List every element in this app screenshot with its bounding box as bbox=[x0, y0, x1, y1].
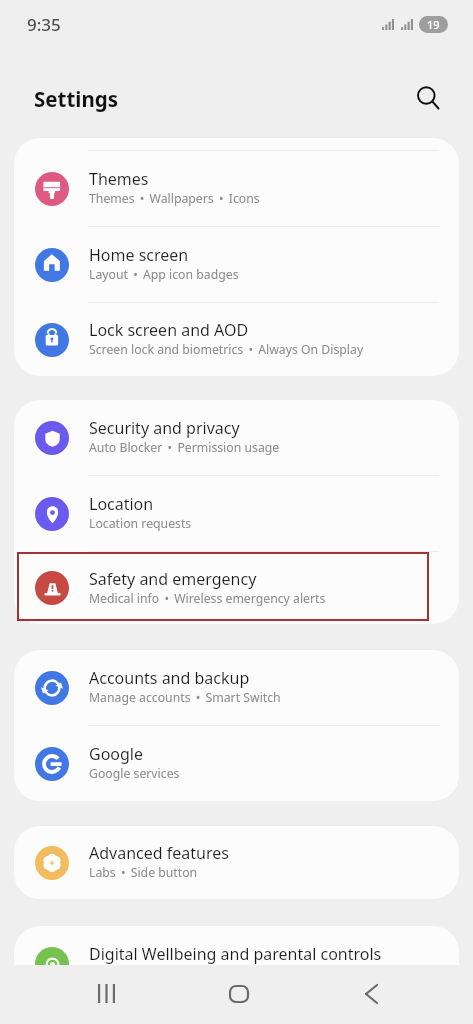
staticText: Location requests bbox=[89, 515, 192, 532]
button[interactable]: Google bbox=[14, 726, 459, 801]
staticText: Settings bbox=[34, 85, 119, 113]
staticText: Lock screen and AOD bbox=[89, 319, 249, 341]
staticText: Themes bbox=[89, 168, 149, 190]
staticText: Screen lock and biometrics • Always On D… bbox=[89, 341, 364, 358]
button[interactable]: Themes bbox=[14, 151, 459, 226]
staticText: Google bbox=[89, 743, 144, 765]
button[interactable]: Home screen bbox=[14, 227, 459, 302]
button[interactable]: Back bbox=[341, 966, 401, 1021]
staticText: Medical info • Wireless emergency alerts bbox=[89, 590, 326, 607]
staticText: Home screen bbox=[89, 244, 189, 266]
staticText: Auto Blocker • Permission usage bbox=[89, 439, 280, 456]
button[interactable]: Accounts and backup bbox=[14, 650, 459, 725]
staticText: Labs • Side button bbox=[89, 864, 198, 881]
staticText: Security and privacy bbox=[89, 417, 240, 439]
staticText: 9:35 bbox=[27, 13, 61, 36]
button[interactable]: Security and privacy bbox=[14, 400, 459, 475]
button[interactable]: Search bbox=[408, 76, 452, 120]
staticText: 19 bbox=[427, 17, 440, 32]
button[interactable]: Safety and emergency bbox=[14, 552, 459, 624]
staticText: Safety and emergency bbox=[89, 568, 257, 590]
staticText: Google services bbox=[89, 765, 180, 782]
staticText: Manage accounts • Smart Switch bbox=[89, 689, 281, 706]
button[interactable]: Recent apps bbox=[76, 966, 136, 1021]
staticText: Advanced features bbox=[89, 842, 229, 864]
staticText: Layout • App icon badges bbox=[89, 266, 239, 283]
button[interactable]: Advanced features bbox=[14, 826, 459, 899]
staticText: Accounts and backup bbox=[89, 667, 250, 689]
staticText: Digital Wellbeing and parental controls bbox=[89, 943, 382, 965]
button[interactable]: Home bbox=[209, 966, 269, 1021]
staticText: Themes • Wallpapers • Icons bbox=[89, 190, 260, 207]
button[interactable]: Location bbox=[14, 476, 459, 551]
button[interactable]: Digital Wellbeing and parental controls bbox=[14, 926, 459, 1001]
button[interactable]: Lock screen and AOD bbox=[14, 303, 459, 376]
staticText: Location bbox=[89, 493, 154, 515]
